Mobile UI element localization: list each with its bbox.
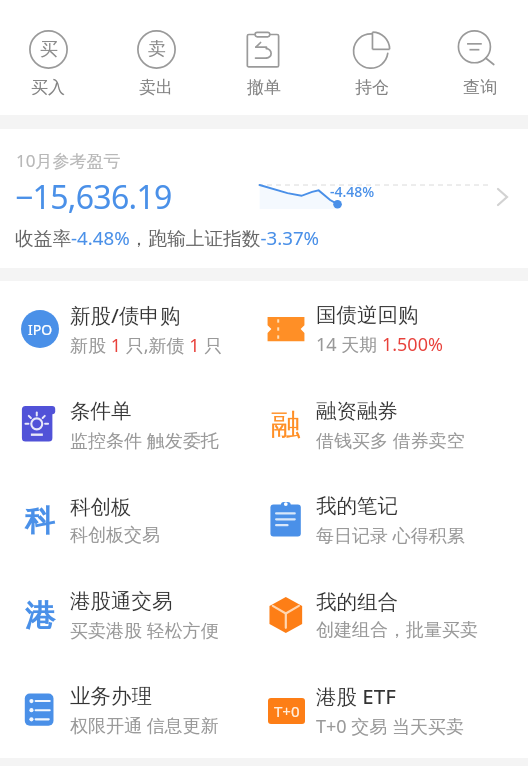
staticText: 新股/债申购 [70,301,181,329]
button[interactable]: 港 [0,568,264,663]
button[interactable]: 撤单 [216,0,312,115]
staticText: IPO [28,320,53,339]
button[interactable]: T+0 [264,663,528,758]
staticText: -4.48% [330,182,375,201]
staticText: 每日记录 心得积累 [316,523,465,548]
staticText: T+0 [274,701,300,721]
staticText: 创建组合，批量买卖 [316,619,478,642]
button[interactable]: 查询 [432,0,528,115]
button[interactable]: IPO [0,281,264,377]
staticText: 港 [25,597,55,635]
button[interactable]: 持仓 [324,0,420,115]
staticText: 国债逆回购 [316,302,419,328]
staticText: 我的组合 [316,589,398,615]
staticText: 港股 ETF [316,682,397,710]
staticText: 新股 1 只,新债 1 只 [70,333,223,358]
staticText: 买入 [31,77,65,98]
staticText: 卖出 [139,77,173,98]
staticText: 我的笔记 [316,493,398,519]
staticText: 条件单 [70,398,132,424]
staticText: 撤单 [247,77,281,98]
staticText: 权限开通 信息更新 [70,713,219,738]
staticText: 科 [25,502,55,540]
staticText: 查询 [463,77,497,98]
staticText: 融资融券 [316,398,398,424]
staticText: 买 [40,38,58,61]
button[interactable]: 条件单 [0,377,264,473]
staticText: 收益率-4.48%，跑输上证指数-3.37% [15,225,320,251]
button[interactable]: 我的组合 [264,568,528,663]
staticText: 卖 [148,38,166,61]
button[interactable]: 融 [264,377,528,473]
staticText: 14 天期 1.500% [316,332,443,357]
button[interactable]: 我的笔记 [264,473,528,568]
staticText: 科创板 [70,494,132,520]
staticText: 借钱买多 借券卖空 [316,428,465,453]
staticText: T+0 交易 当天买卖 [316,714,464,739]
staticText: 融 [271,406,301,444]
button[interactable]: 科 [0,473,264,568]
staticText: 10月参考盈亏 [16,149,121,172]
staticText: 科创板交易 [70,524,160,547]
staticText: 买卖港股 轻松方便 [70,618,219,643]
staticText: 业务办理 [70,683,152,709]
button[interactable]: 业务办理 [0,663,264,758]
staticText: 港股通交易 [70,588,173,614]
button[interactable]: 买 [0,0,96,115]
button[interactable]: 10月参考盈亏 [0,129,528,268]
staticText: 监控条件 触发委托 [70,428,219,453]
staticText: −15,636.19 [15,175,172,219]
button[interactable]: 卖 [108,0,204,115]
button[interactable]: 国债逆回购 [264,281,528,377]
staticText: 持仓 [355,77,389,98]
